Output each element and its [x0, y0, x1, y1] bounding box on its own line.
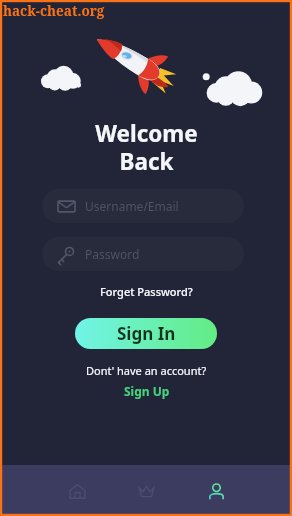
button[interactable]: Premium: [123, 468, 169, 514]
staticText: Username/Email: [85, 198, 179, 214]
staticText: Forget Password?: [100, 284, 193, 299]
button[interactable]: Home: [54, 468, 100, 514]
button[interactable]: Sign In: [75, 318, 217, 349]
button[interactable]: Sign Up: [118, 381, 176, 401]
staticText: hack-cheat.org: [3, 2, 105, 20]
button[interactable]: Password: [42, 237, 244, 271]
staticText: Welcome Back: [95, 118, 198, 177]
button[interactable]: Username/Email: [42, 189, 244, 223]
button[interactable]: Profile: [193, 468, 239, 514]
staticText: Sign Up: [124, 383, 170, 399]
button[interactable]: Forget Password?: [94, 281, 199, 302]
staticText: Dont' have an account?: [86, 363, 207, 378]
staticText: Password: [85, 246, 140, 262]
staticText: Sign In: [117, 322, 176, 345]
